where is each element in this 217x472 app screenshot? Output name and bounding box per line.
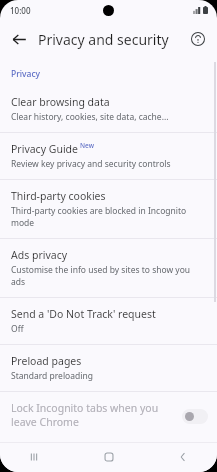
button[interactable]: Help (183, 24, 213, 54)
staticText: Third-party cookies (11, 189, 106, 203)
staticText: Review key privacy and security controls (11, 158, 171, 170)
staticText: Send a 'Do Not Track' request (11, 307, 156, 321)
button[interactable]: Third-party cookies (0, 180, 217, 238)
staticText: Customise the info used by sites to show… (11, 264, 203, 288)
button[interactable]: Lock Incognito tabs toggle (182, 409, 208, 424)
staticText: Privacy (11, 68, 41, 80)
staticText: Privacy Guide (11, 142, 78, 156)
button[interactable]: Back (167, 442, 199, 472)
staticText: Privacy and security (38, 30, 169, 49)
button[interactable]: Back (4, 24, 34, 54)
staticText: Ads privacy (11, 248, 68, 262)
staticText: Lock Incognito tabs when you leave Chrom… (11, 401, 174, 429)
staticText: Clear browsing data (11, 95, 110, 109)
button[interactable]: Preload pages (0, 345, 217, 391)
staticText: 10:00 (10, 5, 31, 16)
staticText: Clear history, cookies, site data, cache… (11, 111, 169, 123)
staticText: Standard preloading (11, 370, 93, 382)
staticText: Third-party cookies are blocked in Incog… (11, 205, 203, 229)
button[interactable]: Recent apps (18, 442, 50, 472)
button[interactable]: Ads privacy (0, 239, 217, 297)
button[interactable]: Clear browsing data (0, 86, 217, 132)
button[interactable]: Privacy Guide (0, 133, 217, 179)
button[interactable]: Send a 'Do Not Track' request (0, 298, 217, 344)
staticText: Preload pages (11, 354, 82, 368)
staticText: New (80, 141, 94, 150)
button[interactable]: Lock Incognito tabs when you leave Chrom… (0, 392, 217, 442)
staticText: Off (11, 323, 24, 335)
button[interactable]: Home (93, 442, 125, 472)
